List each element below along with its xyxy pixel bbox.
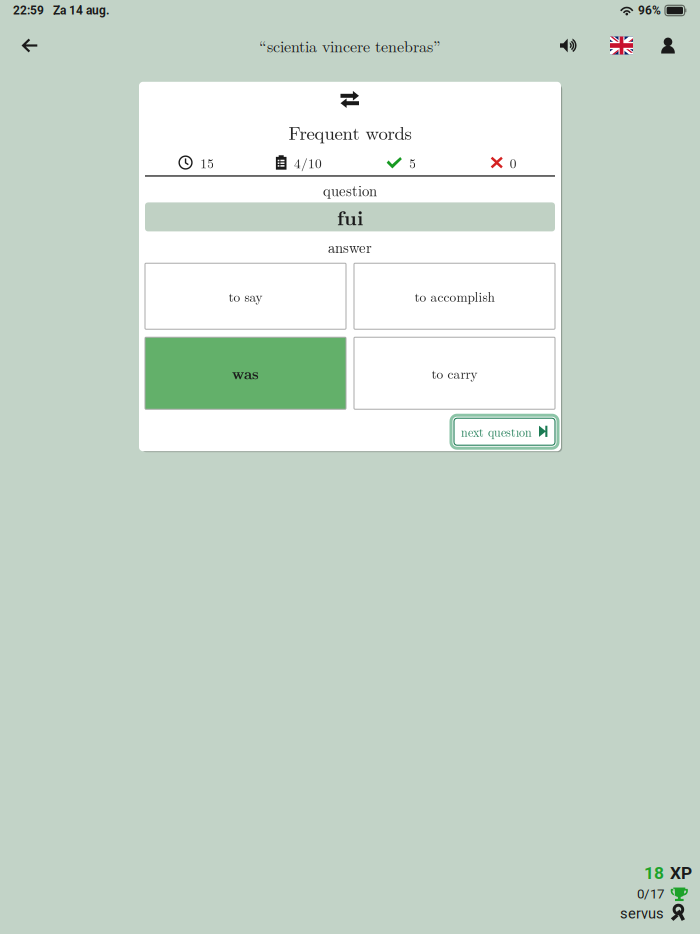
button[interactable]: Swap question direction	[340, 91, 359, 109]
staticText: to accomplish	[414, 287, 494, 306]
staticText: 0/17	[637, 886, 664, 902]
staticText: 4/10	[294, 153, 322, 172]
staticText: question	[323, 180, 377, 200]
staticText: servus	[620, 905, 664, 922]
staticText: “scientia vincere tenebras”	[259, 34, 441, 57]
button[interactable]: to accomplish	[354, 263, 555, 329]
staticText: next question	[461, 423, 532, 440]
button[interactable]: was	[145, 337, 346, 409]
button[interactable]: to say	[145, 263, 346, 329]
staticText: was	[232, 363, 259, 384]
staticText: Za 14 aug.	[53, 3, 109, 18]
button[interactable]: Profile	[650, 29, 686, 61]
staticText: to say	[228, 287, 262, 306]
button[interactable]: Back	[14, 30, 46, 60]
staticText: to carry	[431, 364, 477, 383]
staticText: 18	[644, 863, 664, 883]
staticText: 96%	[638, 3, 661, 18]
button[interactable]: Language	[593, 28, 650, 62]
staticText: XP	[670, 863, 692, 883]
button[interactable]: next question	[451, 415, 558, 448]
button[interactable]: to carry	[354, 337, 555, 409]
staticText: 15	[200, 153, 214, 172]
staticText: 22:59	[13, 3, 44, 18]
staticText: fui	[337, 203, 363, 231]
button[interactable]: Sound	[544, 30, 593, 61]
staticText: answer	[328, 236, 372, 257]
staticText: 5	[409, 153, 416, 172]
staticText: Frequent words	[288, 119, 411, 145]
staticText: 0	[510, 153, 517, 172]
